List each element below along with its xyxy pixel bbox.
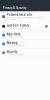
- staticText: Save where you go with this device: [7, 27, 30, 29]
- staticText: Location history: [7, 24, 29, 27]
- staticText: Sharing: [7, 41, 18, 45]
- staticText: Personalised ads: [7, 13, 32, 16]
- button[interactable]: Location history: [0, 22, 50, 31]
- button[interactable]: Sharing: [0, 40, 50, 48]
- button[interactable]: App data: [0, 31, 50, 40]
- button[interactable]: Security: [0, 48, 50, 57]
- staticText: App data: [7, 32, 21, 36]
- button[interactable]: Personalised ads: [0, 11, 50, 22]
- staticText: Manage stored content: [7, 36, 23, 38]
- staticText: Privacy & Security: [3, 6, 26, 10]
- staticText: We use your activity to show ads that ma…: [7, 17, 44, 20]
- staticText: Security: [7, 50, 17, 53]
- staticText: Choose who can see you: [7, 45, 25, 47]
- staticText: Passwords and sign-in: [7, 54, 23, 56]
